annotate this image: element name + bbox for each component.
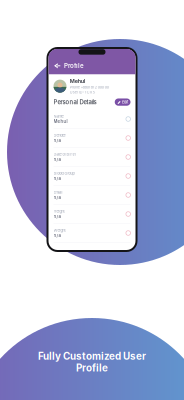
- staticText: Email: [53, 190, 62, 195]
- staticText: n/a: [53, 214, 60, 219]
- staticText: User ID: 1CX5: [70, 90, 95, 94]
- button[interactable]: Date of Birth: [48, 148, 135, 167]
- staticText: Name: [53, 114, 63, 119]
- button[interactable]: Weight: [48, 224, 135, 243]
- staticText: Phone +8801812 000 00: [70, 85, 109, 89]
- staticText: n/a: [53, 138, 60, 143]
- staticText: Profile: [76, 362, 108, 374]
- staticText: n/a: [53, 195, 60, 200]
- staticText: Mehul: [53, 119, 67, 124]
- button[interactable]: Height: [48, 205, 135, 224]
- button[interactable]: Name: [48, 110, 135, 129]
- button[interactable]: Back: [48, 61, 64, 71]
- button[interactable]: Email: [48, 186, 135, 205]
- staticText: n/a: [53, 157, 60, 162]
- staticText: n/a: [53, 233, 60, 238]
- staticText: Date of Birth: [53, 152, 75, 157]
- staticText: n/a: [53, 176, 60, 181]
- staticText: Weight: [53, 228, 65, 233]
- staticText: Mehul: [70, 78, 85, 84]
- staticText: Edit: [122, 100, 128, 104]
- staticText: Blood Group: [53, 171, 74, 176]
- button[interactable]: Blood Group: [48, 167, 135, 186]
- staticText: Personal Details: [53, 98, 96, 106]
- button[interactable]: Edit: [115, 98, 130, 106]
- button[interactable]: Gender: [48, 129, 135, 148]
- staticText: Gender: [53, 133, 65, 138]
- staticText: Profile: [64, 62, 84, 69]
- staticText: Fully Customized User: [38, 350, 146, 362]
- staticText: Height: [53, 209, 64, 214]
